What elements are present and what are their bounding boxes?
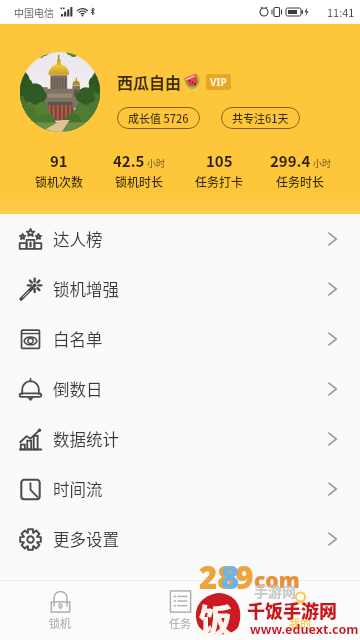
button[interactable]: 达人榜 bbox=[0, 214, 360, 264]
staticText: 11:41 bbox=[327, 4, 355, 20]
staticText: 数据统计 bbox=[53, 427, 119, 451]
staticText: 西瓜自由 bbox=[117, 70, 182, 93]
staticText: VIP bbox=[210, 75, 227, 89]
staticText: 8 bbox=[221, 556, 240, 598]
button[interactable]: 共专注61天 bbox=[232, 110, 289, 126]
staticText: 任务时长 bbox=[276, 173, 325, 190]
button[interactable]: 成长值 5726 bbox=[128, 110, 189, 126]
staticText: 我的 bbox=[289, 615, 311, 631]
button[interactable]: 更多设置 bbox=[0, 514, 360, 564]
staticText: 倒数日 bbox=[53, 377, 103, 401]
staticText: 达人榜 bbox=[53, 227, 103, 251]
staticText: 锁机次数 bbox=[35, 173, 84, 190]
staticText: 手游网 bbox=[254, 581, 296, 601]
button[interactable]: 锁机增强 bbox=[0, 264, 360, 314]
staticText: 更多设置 bbox=[53, 527, 119, 551]
staticText: 共专注61天 bbox=[232, 110, 289, 126]
button[interactable]: 数据统计 bbox=[0, 414, 360, 464]
staticText: 锁机时长 bbox=[115, 173, 164, 190]
staticText: com bbox=[254, 566, 300, 595]
button[interactable]: 我的 bbox=[240, 581, 360, 640]
staticText: 成长值 5726 bbox=[128, 110, 189, 126]
staticText: 中国电信 bbox=[14, 5, 54, 19]
staticText: 白名单 bbox=[53, 327, 103, 351]
staticText: 任务打卡 bbox=[195, 173, 244, 190]
staticText: 42.5 bbox=[113, 150, 145, 172]
staticText: 任务 bbox=[169, 615, 191, 631]
staticText: 千饭手游网 bbox=[247, 597, 337, 623]
staticText: 锁机 bbox=[49, 615, 71, 631]
staticText: www.eduext.com bbox=[250, 621, 359, 638]
button[interactable]: 倒数日 bbox=[0, 364, 360, 414]
button[interactable]: VIP bbox=[210, 75, 227, 89]
staticText: 289 bbox=[199, 556, 254, 598]
button[interactable]: 白名单 bbox=[0, 314, 360, 364]
staticText: 锁机增强 bbox=[53, 277, 119, 301]
button[interactable]: 锁机 bbox=[0, 581, 120, 640]
staticText: 小时 bbox=[147, 157, 166, 170]
staticText: 299.4 bbox=[270, 150, 311, 172]
staticText: 小时 bbox=[313, 157, 332, 170]
button[interactable]: 任务 bbox=[120, 581, 240, 640]
staticText: 105 bbox=[206, 150, 233, 172]
button[interactable]: 时间流 bbox=[0, 464, 360, 514]
staticText: 饭 bbox=[199, 595, 232, 640]
staticText: 时间流 bbox=[53, 477, 103, 501]
staticText: 91 bbox=[50, 150, 68, 172]
